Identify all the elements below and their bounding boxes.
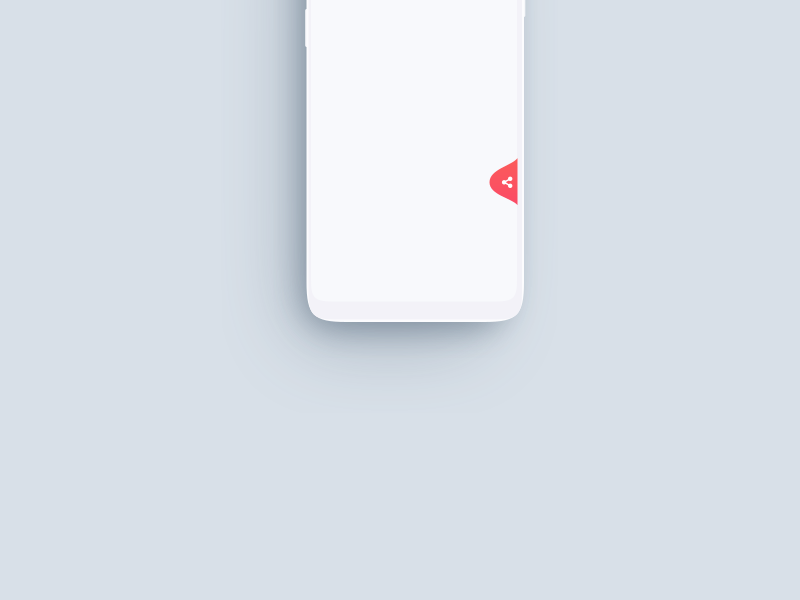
button[interactable]: Share	[489, 158, 517, 205]
